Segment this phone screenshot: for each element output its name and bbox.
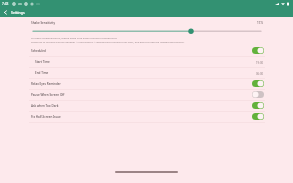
staticText: Shake Sensitivity — [31, 21, 56, 25]
button[interactable]: Enabled — [252, 47, 264, 54]
button[interactable]: Shake sensitivity slider — [29, 26, 265, 34]
staticText: 17.5 — [257, 21, 263, 25]
button[interactable]: Enabled — [252, 113, 264, 120]
staticText: 7:43 — [2, 2, 9, 6]
staticText: Fix Half-Screen Issue — [31, 115, 61, 119]
button[interactable]: Enabled — [252, 102, 264, 109]
staticText: Relax Eyes Reminder — [31, 82, 61, 86]
button[interactable]: Ask when Too Dark — [29, 101, 265, 112]
button[interactable]: End Time — [29, 68, 265, 79]
staticText: 19:00 — [256, 61, 264, 65]
button[interactable]: Disabled — [252, 91, 264, 98]
staticText: Start Time — [35, 60, 50, 64]
button[interactable]: Start Time — [29, 57, 265, 68]
button[interactable]: Fix Half-Screen Issue — [29, 112, 265, 123]
staticText: End Time — [35, 71, 49, 75]
button[interactable]: Scheduled — [29, 46, 265, 57]
staticText: Ask when Too Dark — [31, 104, 59, 108]
staticText: Scheduled — [31, 49, 46, 53]
staticText: Please go to Security/Phone Manager -> P… — [31, 40, 185, 43]
staticText: 06:00 — [256, 72, 264, 76]
staticText: To make Scheduled work, please make sure… — [31, 36, 118, 39]
button[interactable]: Enabled — [252, 80, 264, 87]
staticText: Settings — [11, 10, 25, 15]
button[interactable]: Pause When Screen Off — [29, 90, 265, 101]
staticText: Pause When Screen Off — [31, 93, 65, 97]
button[interactable]: Relax Eyes Reminder — [29, 79, 265, 90]
button[interactable]: Back — [0, 8, 11, 17]
